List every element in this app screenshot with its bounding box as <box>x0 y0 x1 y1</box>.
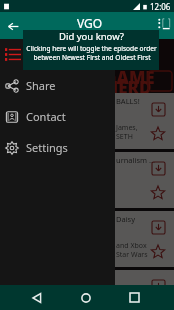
staticText: VGO <box>77 15 103 31</box>
button[interactable] <box>0 270 174 310</box>
staticText: NERD <box>104 76 152 99</box>
staticText: James, SETH <box>116 123 138 141</box>
button[interactable]: Back <box>22 285 52 310</box>
staticText: Settings <box>26 140 68 155</box>
staticText: Did you know? <box>59 30 124 43</box>
staticText: Clicking here will toggle the episode or… <box>26 44 157 53</box>
button[interactable]: Contact <box>0 101 115 132</box>
staticText: Share <box>26 78 56 93</box>
button[interactable]: Settings <box>0 132 115 163</box>
staticText: Contact <box>26 109 66 124</box>
staticText: GAME <box>104 66 155 89</box>
button[interactable]: BALLS! <box>0 93 174 149</box>
button[interactable]: More options <box>154 16 174 36</box>
staticText: BALLS! <box>116 96 140 106</box>
button[interactable]: Home <box>71 285 101 310</box>
button[interactable]: Share <box>0 70 115 101</box>
button[interactable]: Recents <box>119 285 149 310</box>
button[interactable]: Did you know? <box>23 30 159 70</box>
button[interactable]: urnalism ... <box>0 152 174 208</box>
staticText: Daisy <box>116 214 136 224</box>
staticText: 12:06 <box>150 1 171 12</box>
button[interactable]: Daisy <box>0 211 174 267</box>
staticText: urnalism ... <box>116 155 156 165</box>
button[interactable]: Back <box>0 13 26 39</box>
button[interactable] <box>0 39 115 70</box>
staticText: and Xbox Star Wars <box>116 241 148 259</box>
staticText: between Newest First and Oldest First <box>33 53 151 62</box>
